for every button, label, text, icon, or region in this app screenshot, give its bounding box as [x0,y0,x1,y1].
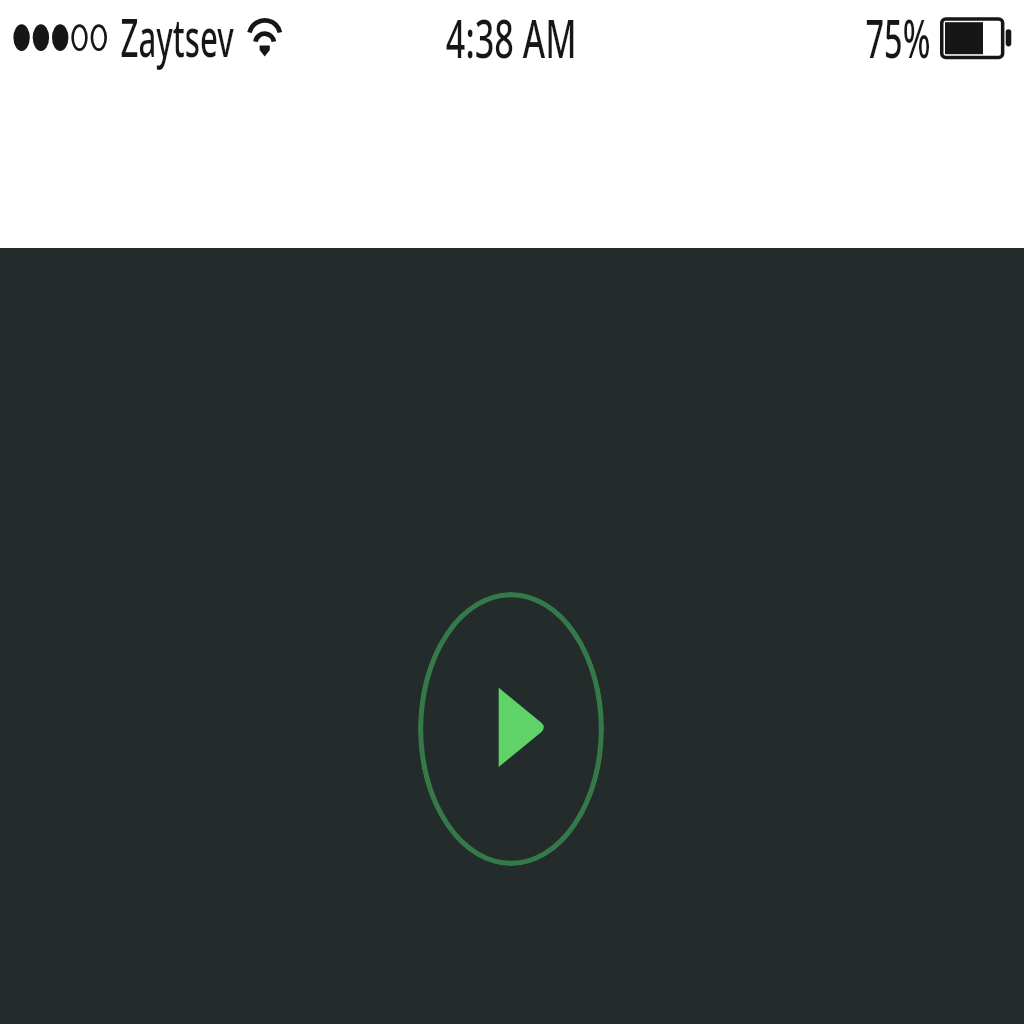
button[interactable]: Play [418,592,604,866]
